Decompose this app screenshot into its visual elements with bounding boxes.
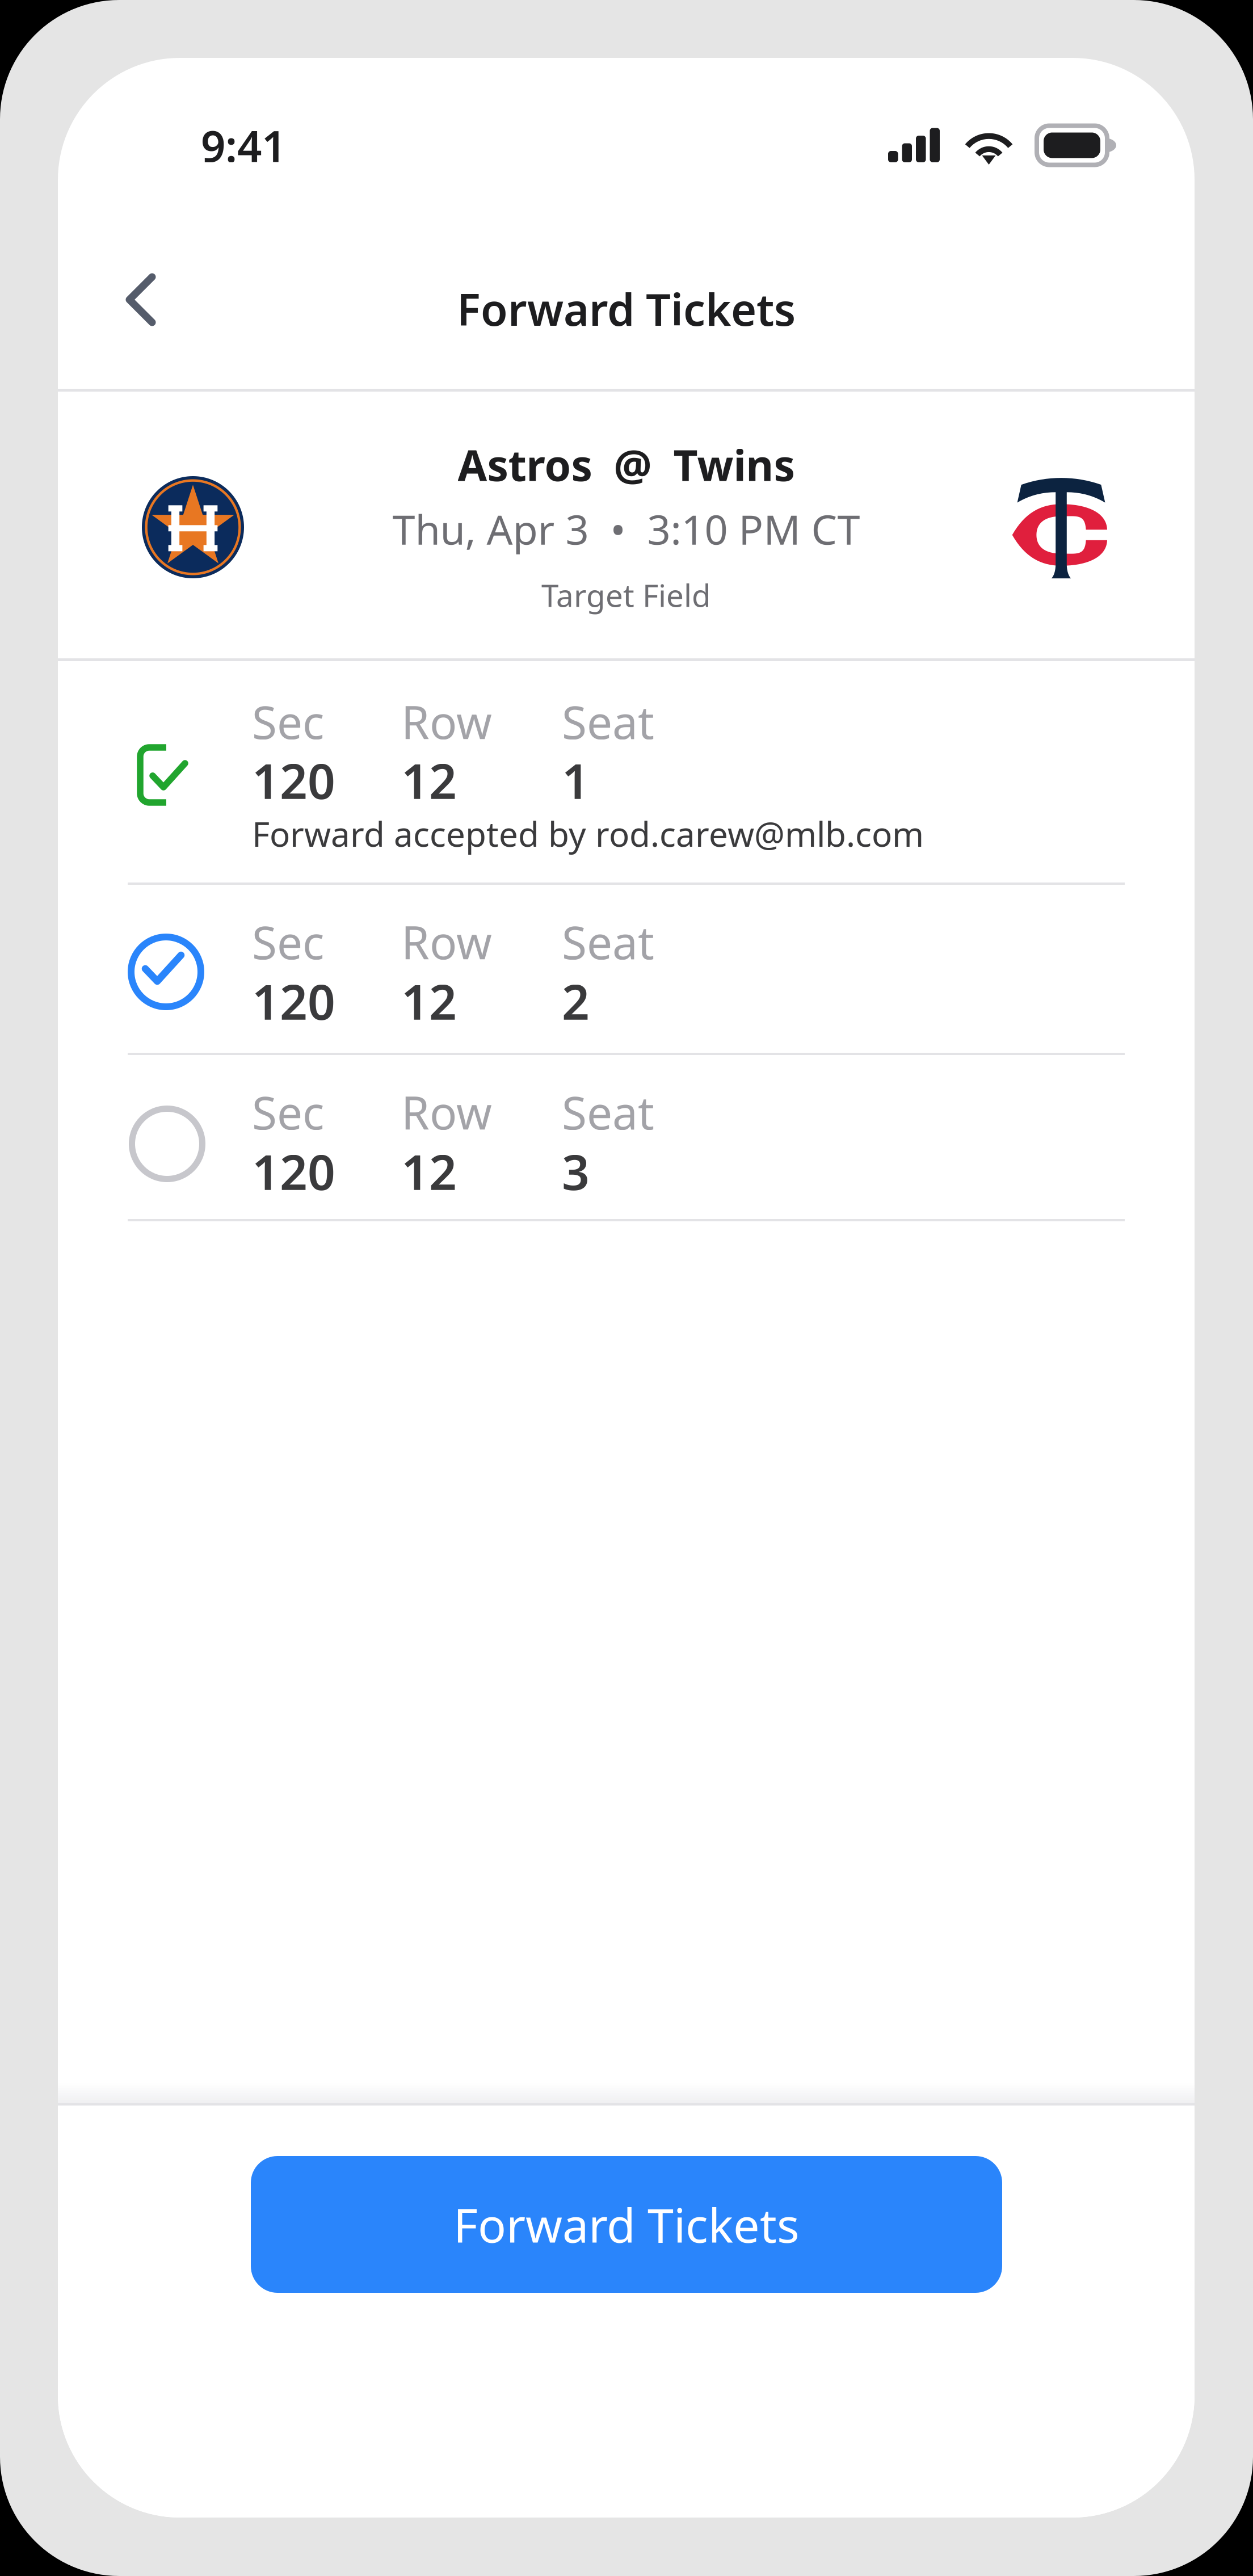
staticText: 120 (252, 969, 335, 1033)
staticText: Seat (562, 1082, 654, 1142)
staticText: 2 (562, 969, 590, 1033)
staticText: 120 (252, 748, 335, 812)
staticText: 12 (401, 969, 457, 1033)
button[interactable]: Sec (58, 885, 1195, 1055)
staticText: Seat (562, 911, 654, 972)
staticText: Sec (252, 691, 324, 752)
button[interactable]: Forward Tickets (251, 2156, 1002, 2293)
staticText: Thu, Apr 3 • 3:10 PM CT (392, 502, 860, 556)
staticText: Row (401, 691, 492, 752)
staticText: 120 (252, 1139, 335, 1203)
staticText: Row (401, 1082, 492, 1142)
button[interactable]: Sec (58, 1055, 1195, 1221)
staticText: 3 (562, 1139, 590, 1203)
staticText: 12 (401, 1139, 457, 1203)
staticText: 1 (562, 748, 590, 812)
button[interactable]: Back (106, 253, 176, 346)
staticText: Forward Tickets (457, 280, 796, 338)
staticText: Seat (562, 691, 654, 752)
button[interactable]: Sec (58, 661, 1195, 885)
staticText: Target Field (541, 574, 711, 616)
staticText: Forward accepted by rod.carew@mlb.com (252, 811, 924, 856)
staticText: Row (401, 911, 492, 972)
staticText: Astros @ Twins (458, 436, 795, 493)
staticText: 9:41 (201, 117, 286, 174)
staticText: Sec (252, 911, 324, 972)
staticText: 12 (401, 748, 457, 812)
staticText: Forward Tickets (453, 2193, 800, 2256)
staticText: Sec (252, 1082, 324, 1142)
